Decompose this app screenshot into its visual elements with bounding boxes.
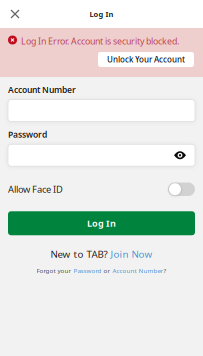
staticText: Account Number <box>8 84 76 96</box>
staticText: Log In Error. Account is security blocke… <box>21 35 179 47</box>
staticText: Password <box>73 266 101 275</box>
staticText: New to TAB? <box>50 247 110 260</box>
button[interactable]: Join Now <box>110 247 152 260</box>
staticText: or <box>101 266 112 275</box>
staticText: Log In <box>89 9 113 19</box>
staticText: Unlock Your Account <box>107 54 185 65</box>
button[interactable]: Log In <box>8 211 195 235</box>
staticText: Password <box>8 129 47 140</box>
button[interactable]: Password <box>73 266 101 275</box>
staticText: Forgot your <box>36 266 73 275</box>
staticText: Log In <box>87 217 116 229</box>
button[interactable]: Unlock Your Account <box>98 52 194 67</box>
button[interactable]: Allow Face ID <box>168 182 195 196</box>
button[interactable]: Close <box>0 0 30 28</box>
staticText: Join Now <box>110 247 152 260</box>
staticText: Allow Face ID <box>8 183 63 195</box>
staticText: ? <box>163 266 166 275</box>
button[interactable]: Account Number <box>112 266 163 275</box>
staticText: Account Number <box>112 266 163 275</box>
